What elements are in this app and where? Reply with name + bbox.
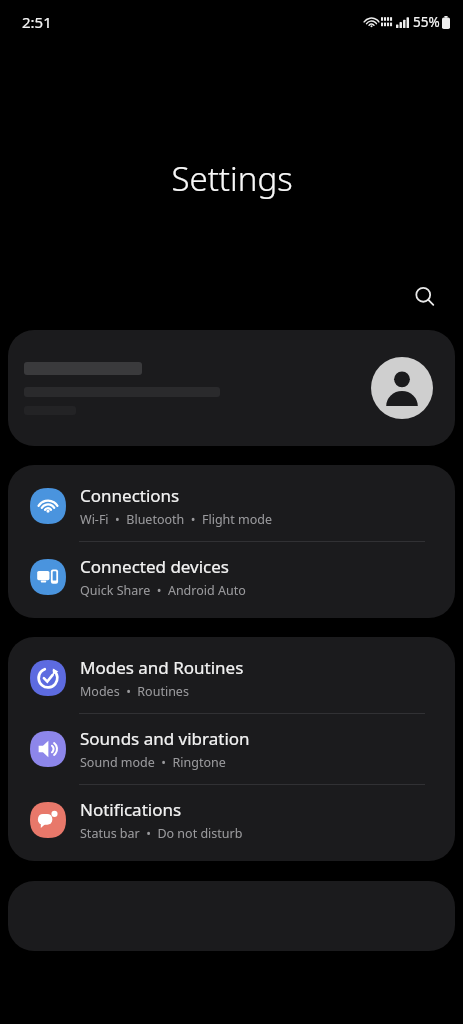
staticText: Wi-Fi • Bluetooth • Flight mode [80,511,273,528]
button[interactable]: Notifications [8,785,455,855]
staticText: Quick Share • Android Auto [80,582,246,599]
button[interactable] [8,881,455,951]
staticText: Connections [80,484,180,507]
staticText: Sound mode • Ringtone [80,754,226,771]
button[interactable]: Search [403,275,445,317]
staticText: Modes • Routines [80,683,189,700]
staticText: Notifications [80,798,182,821]
button[interactable] [8,330,455,446]
button[interactable]: Connected devices [8,542,455,612]
button[interactable]: Modes and Routines [8,643,455,713]
staticText: 2:51 [22,12,52,32]
staticText: 55% [413,13,440,31]
button[interactable]: Sounds and vibration [8,714,455,784]
staticText: Modes and Routines [80,656,244,679]
staticText: Settings [171,156,293,201]
staticText: Sounds and vibration [80,727,250,750]
staticText: Status bar • Do not disturb [80,825,243,842]
staticText: Connected devices [80,555,230,578]
button[interactable]: Connections [8,471,455,541]
